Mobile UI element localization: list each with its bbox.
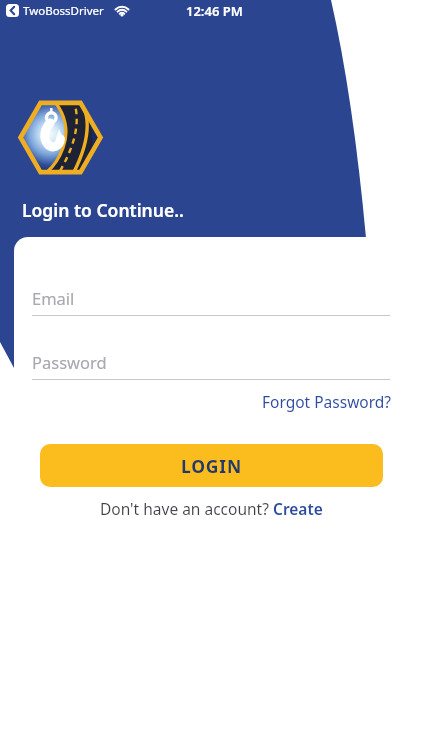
staticText: Forgot Password? xyxy=(262,391,392,412)
staticText: Password xyxy=(32,351,107,373)
staticText: 12:46 PM xyxy=(186,2,243,20)
staticText: Create xyxy=(273,498,323,519)
button[interactable]: LOGIN xyxy=(40,444,383,487)
staticText: LOGIN xyxy=(181,454,242,478)
button[interactable]: Forgot Password? xyxy=(262,391,392,412)
staticText: Login to Continue.. xyxy=(22,198,184,222)
staticText: TwoBossDriver xyxy=(23,3,104,19)
staticText: Don't have an account? xyxy=(100,498,273,519)
button[interactable]: Email xyxy=(32,284,390,316)
staticText: Email xyxy=(32,287,75,309)
button[interactable]: Create xyxy=(273,498,323,519)
button[interactable]: Password xyxy=(32,348,390,380)
button[interactable] xyxy=(3,1,22,20)
